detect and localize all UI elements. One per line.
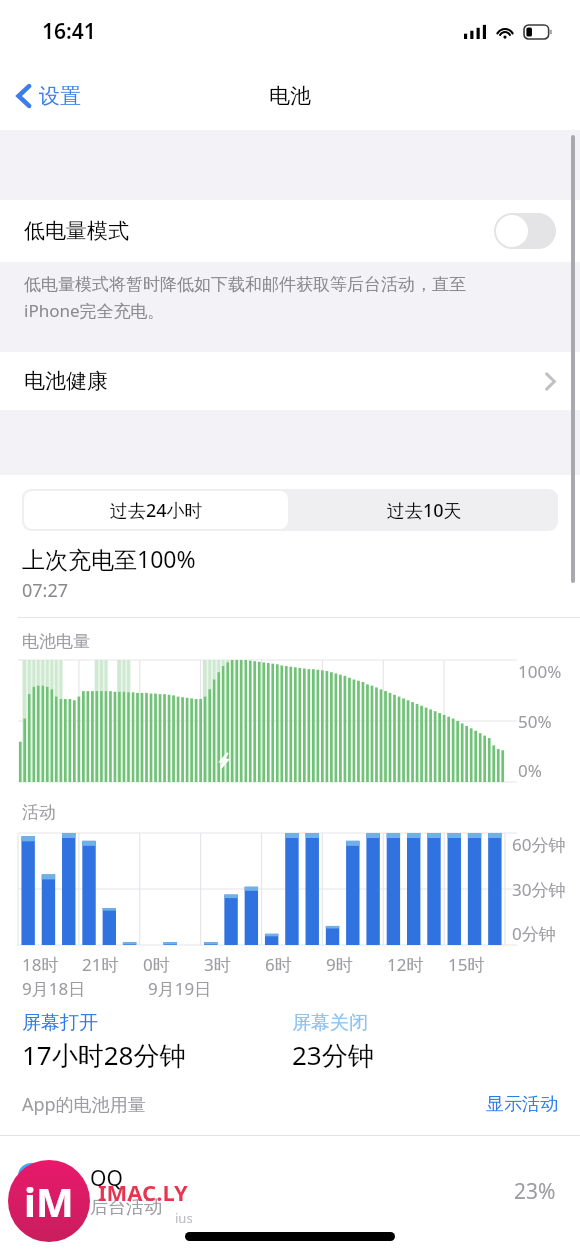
staticText: ius (175, 1209, 193, 1227)
staticText: 显示活动 (486, 1093, 558, 1116)
button[interactable]: QQ (0, 1149, 580, 1233)
button[interactable]: 低电量模式开关 (494, 213, 556, 249)
staticText: 100% (518, 660, 562, 683)
staticText: 低电量模式将暂时降低如下载和邮件获取等后台活动，直至 iPhone完全充电。 (24, 274, 466, 322)
staticText: 07:27 (22, 578, 69, 603)
staticText: App的电池用量 (22, 1092, 146, 1117)
staticText: 30分钟 (512, 878, 566, 901)
staticText: 16:41 (42, 17, 96, 46)
button[interactable]: 过去10天 (290, 489, 558, 531)
staticText: 3时 (204, 953, 231, 976)
staticText: 15时 (448, 953, 485, 976)
staticText: iM (24, 1174, 74, 1228)
button[interactable]: 电池健康 (0, 352, 580, 410)
button[interactable]: 过去24小时 (24, 491, 288, 529)
staticText: 电池电量 (22, 631, 90, 652)
staticText: 50% (518, 710, 552, 733)
staticText: 0时 (143, 953, 170, 976)
staticText: 过去10天 (387, 498, 462, 523)
staticText: 0分钟 (512, 922, 556, 945)
staticText: 6时 (265, 953, 292, 976)
staticText: 上次充电至100% (22, 543, 196, 574)
staticText: 23% (514, 1177, 556, 1206)
staticText: 17小时28分钟 (22, 1037, 186, 1073)
staticText: 9月18日 (22, 977, 86, 1000)
staticText: 0% (518, 759, 542, 782)
staticText: 12时 (387, 953, 424, 976)
staticText: 23分钟 (292, 1037, 374, 1073)
staticText: QQ (90, 1164, 123, 1193)
staticText: 屏幕关闭 (292, 1011, 368, 1035)
staticText: IMAC.LY (98, 1177, 188, 1207)
staticText: 电池健康 (24, 368, 108, 394)
staticText: 9月19日 (148, 977, 212, 1000)
staticText: 后台活动 (90, 1196, 162, 1219)
staticText: 设置 (39, 83, 81, 109)
button[interactable]: 低电量模式 (0, 200, 580, 262)
staticText: 60分钟 (512, 833, 566, 856)
button[interactable]: 设置 (0, 74, 93, 118)
staticText: 21时 (82, 953, 119, 976)
staticText: 活动 (22, 802, 56, 823)
button[interactable]: 显示活动 (474, 1093, 580, 1116)
staticText: 电池 (269, 83, 311, 109)
staticText: 低电量模式 (24, 218, 129, 244)
staticText: 屏幕打开 (22, 1011, 98, 1035)
staticText: 9时 (326, 953, 353, 976)
staticText: 过去24小时 (110, 498, 203, 523)
staticText: 18时 (22, 953, 59, 976)
